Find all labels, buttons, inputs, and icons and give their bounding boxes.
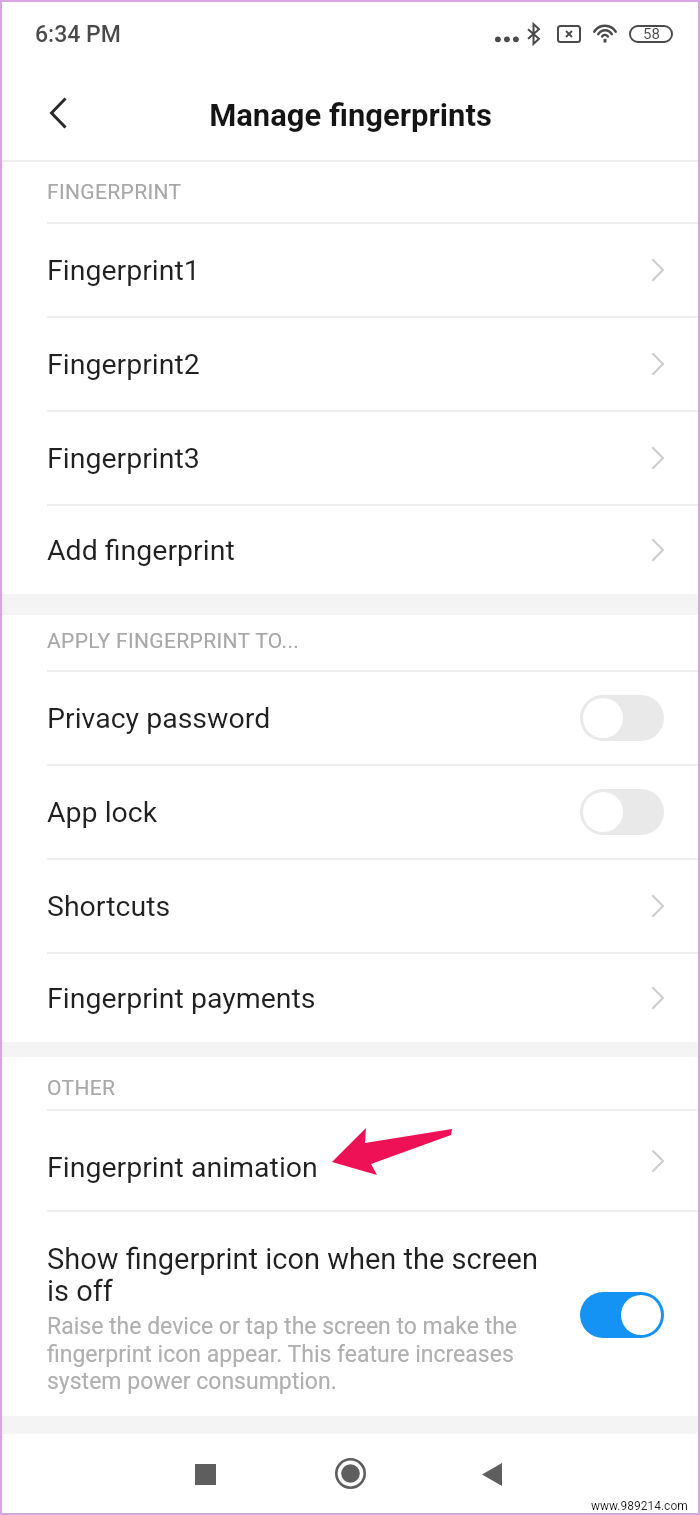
staticText: Fingerprint payments (47, 982, 316, 1015)
button[interactable]: Fingerprint payments (2, 954, 698, 1042)
button[interactable]: Shortcuts (2, 860, 698, 952)
staticText: 58 (643, 25, 660, 43)
button[interactable]: Switch off (580, 695, 664, 741)
staticText: App lock (47, 796, 158, 829)
staticText: Fingerprint animation (47, 1151, 318, 1184)
staticText: Show fingerprint icon when the screen is… (47, 1242, 566, 1308)
button[interactable]: Show fingerprint icon when the screen is… (2, 1212, 698, 1418)
staticText: Manage fingerprints (209, 97, 492, 133)
button[interactable]: Home (320, 1443, 380, 1503)
button[interactable]: Switch off (580, 789, 664, 835)
staticText: Add fingerprint (47, 534, 235, 567)
staticText: APPLY FINGERPRINT TO... (47, 629, 300, 654)
staticText: Shortcuts (47, 890, 171, 923)
staticText: Fingerprint2 (47, 348, 200, 381)
staticText: Privacy password (47, 702, 271, 735)
button[interactable]: Fingerprint animation (2, 1111, 698, 1210)
staticText: www.989214.com (591, 1499, 688, 1513)
staticText: Fingerprint1 (47, 254, 200, 287)
button[interactable]: Fingerprint2 (2, 318, 698, 410)
button[interactable]: Recents (175, 1444, 235, 1504)
staticText: Fingerprint3 (47, 442, 200, 475)
staticText: FINGERPRINT (47, 180, 182, 205)
button[interactable]: Back (30, 85, 86, 141)
button[interactable]: Fingerprint1 (2, 224, 698, 316)
button[interactable]: Switch on (580, 1292, 664, 1338)
button[interactable]: Fingerprint3 (2, 412, 698, 504)
staticText: Raise the device or tap the screen to ma… (47, 1313, 566, 1394)
staticText: OTHER (47, 1076, 116, 1101)
button[interactable]: Add fingerprint (2, 506, 698, 594)
button[interactable]: App lock (2, 766, 698, 858)
staticText: 6:34 PM (35, 21, 121, 48)
button[interactable]: Privacy password (2, 672, 698, 764)
button[interactable]: Back (462, 1444, 522, 1504)
